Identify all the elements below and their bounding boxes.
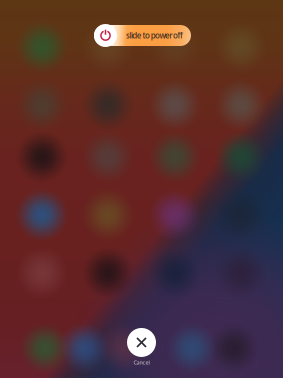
staticText: slide to power off [126, 30, 183, 41]
button[interactable]: slide to power off [94, 24, 191, 47]
staticText: Cancel [133, 359, 149, 366]
button[interactable]: Cancel [127, 328, 156, 366]
